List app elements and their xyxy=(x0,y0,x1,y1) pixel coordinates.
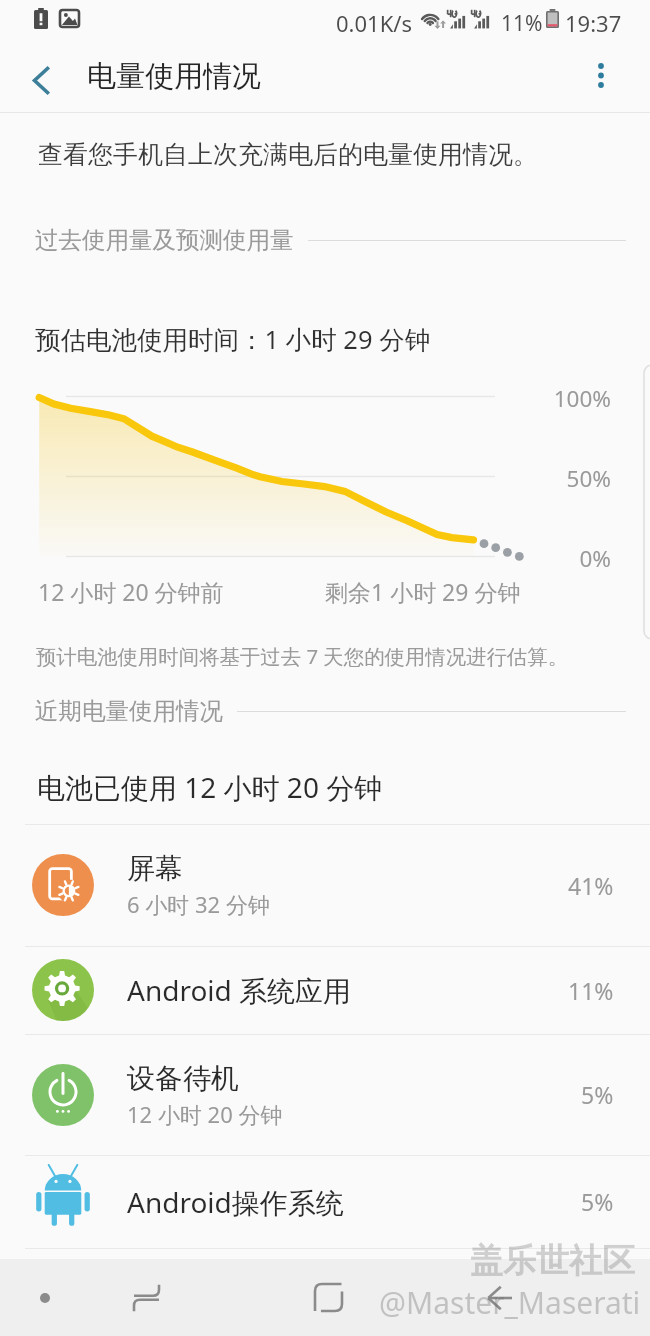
staticText: 设备待机 xyxy=(127,1061,239,1096)
staticText: 屏幕 xyxy=(127,851,183,886)
staticText: 5% xyxy=(581,1186,614,1217)
staticText: 盖乐世社区 xyxy=(470,1240,635,1282)
button[interactable]: Home xyxy=(297,1259,359,1336)
staticText: 预估电池使用时间：1 小时 29 分钟 xyxy=(35,322,431,357)
staticText: 11% xyxy=(501,9,543,38)
button[interactable]: 屏幕 xyxy=(0,824,650,946)
staticText: 100% xyxy=(491,383,611,414)
staticText: 电池已使用 12 小时 20 分钟 xyxy=(37,768,383,806)
button[interactable]: Android 系统应用 xyxy=(0,946,650,1034)
staticText: 12 小时 20 分钟 xyxy=(127,1099,283,1129)
staticText: 50% xyxy=(491,463,611,494)
button[interactable]: Recents indicator xyxy=(14,1259,76,1336)
button[interactable]: Back xyxy=(468,1259,530,1336)
staticText: 剩余1 小时 29 分钟 xyxy=(325,576,521,607)
staticText: 0.01K/s xyxy=(336,8,412,38)
staticText: 5% xyxy=(581,1079,614,1110)
button[interactable]: More options xyxy=(573,47,629,103)
staticText: 近期电量使用情况 xyxy=(35,696,223,726)
staticText: 11% xyxy=(568,975,614,1006)
staticText: 电量使用情况 xyxy=(87,58,261,95)
staticText: 19:37 xyxy=(565,8,622,38)
staticText: 0% xyxy=(491,543,611,574)
staticText: 6 小时 32 分钟 xyxy=(127,889,270,919)
staticText: 41% xyxy=(568,870,614,901)
button[interactable]: Android操作系统 xyxy=(0,1155,650,1248)
staticText: @Master_Maserati xyxy=(379,1282,641,1323)
button[interactable]: Back xyxy=(13,52,69,108)
staticText: 预计电池使用时间将基于过去 7 天您的使用情况进行估算。 xyxy=(36,642,569,670)
staticText: 12 小时 20 分钟前 xyxy=(38,576,224,607)
button[interactable]: 设备待机 xyxy=(0,1034,650,1155)
staticText: Android操作系统 xyxy=(127,1183,344,1221)
button[interactable]: Recent apps xyxy=(115,1259,177,1336)
staticText: Android 系统应用 xyxy=(127,971,352,1009)
staticText: 查看您手机自上次充满电后的电量使用情况。 xyxy=(38,139,538,170)
staticText: 过去使用量及预测使用量 xyxy=(35,225,294,255)
